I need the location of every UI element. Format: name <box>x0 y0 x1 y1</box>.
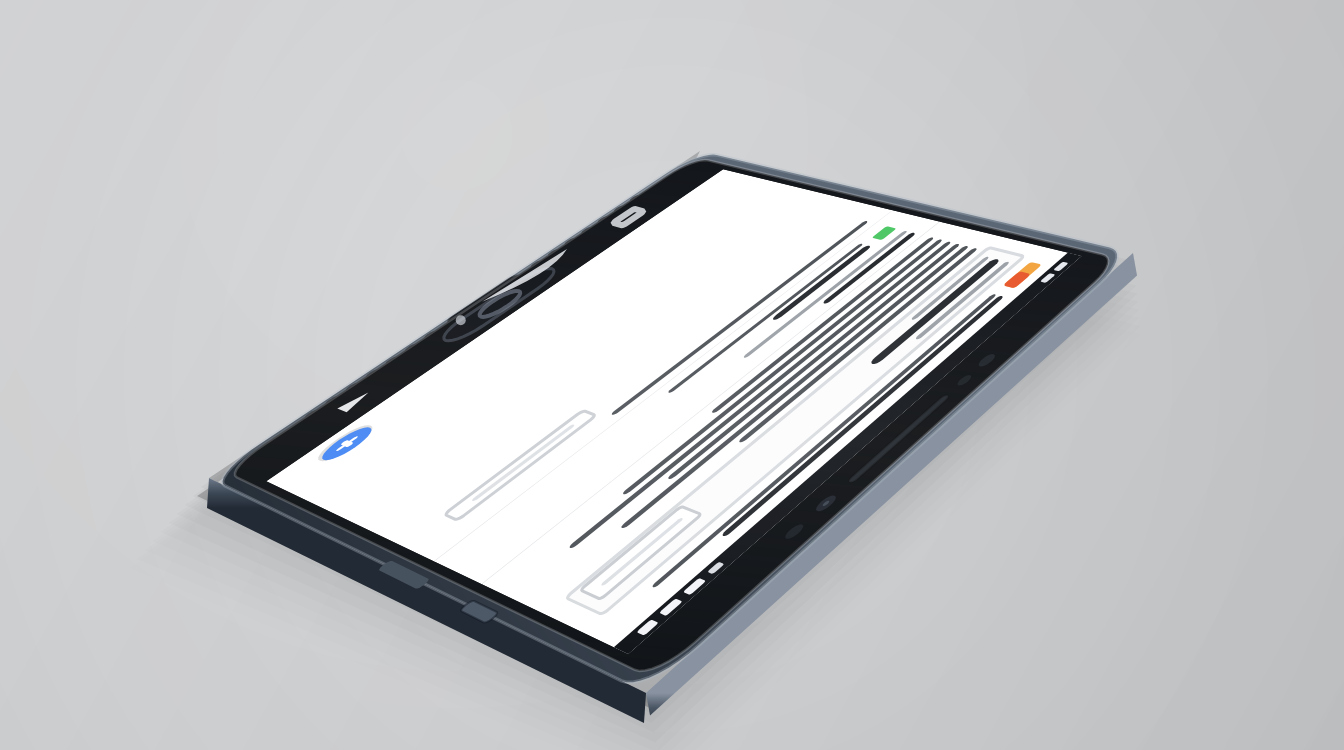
button[interactable]: Phone showing list app <box>0 0 1344 750</box>
